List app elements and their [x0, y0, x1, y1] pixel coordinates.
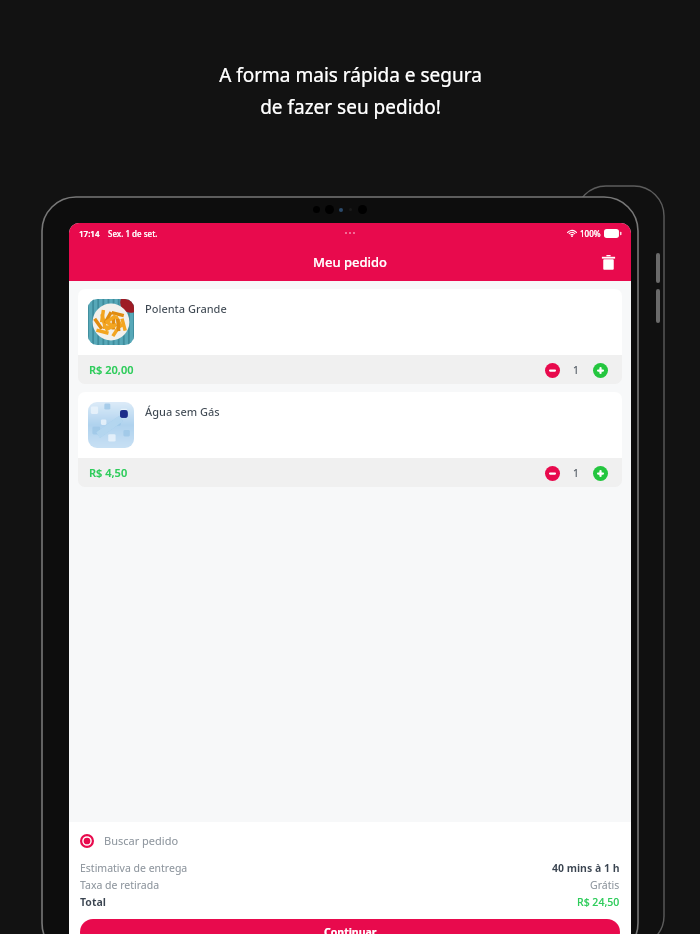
staticText: 1 [573, 466, 579, 480]
button[interactable]: Adicionar um [589, 462, 611, 484]
button[interactable]: Continuar [80, 919, 620, 934]
staticText: Total [80, 895, 106, 909]
staticText: R$ 4,50 [89, 465, 128, 480]
staticText: Taxa de retirada [80, 878, 160, 892]
staticText: R$ 20,00 [89, 362, 134, 377]
staticText: Meu pedido [313, 253, 388, 271]
staticText: 40 mins à 1 h [552, 861, 620, 875]
staticText: Sex. 1 de set. [108, 228, 158, 239]
staticText: Água sem Gás [145, 404, 220, 419]
button[interactable]: Remover um [541, 462, 563, 484]
button[interactable]: Adicionar um [589, 359, 611, 381]
staticText: Continuar [324, 925, 377, 934]
staticText: Grátis [590, 878, 620, 892]
staticText: Estimativa de entrega [80, 861, 188, 875]
staticText: A forma mais rápida e segura [219, 62, 482, 88]
button[interactable]: Polenta Grande [78, 289, 622, 384]
button[interactable]: Água sem Gás [78, 392, 622, 487]
staticText: R$ 24,50 [577, 895, 620, 909]
staticText: 1 [573, 363, 579, 377]
button[interactable]: Buscar pedido [80, 833, 620, 848]
staticText: 100% [580, 228, 601, 239]
button[interactable]: Meu pedido [69, 243, 631, 281]
button[interactable]: Esvaziar pedido [595, 249, 621, 275]
staticText: de fazer seu pedido! [260, 94, 441, 120]
staticText: Buscar pedido [104, 833, 179, 848]
staticText: Polenta Grande [145, 301, 227, 316]
staticText: 17:14 [79, 228, 100, 239]
button[interactable]: Remover um [541, 359, 563, 381]
